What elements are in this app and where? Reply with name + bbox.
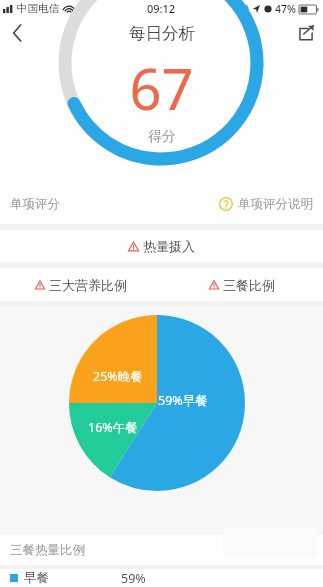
staticText: 中国电信 <box>17 2 59 15</box>
button[interactable]: 三大营养比例 <box>0 268 161 301</box>
staticText: 热量摄入 <box>143 238 195 254</box>
staticText: 47% <box>275 2 296 16</box>
staticText: 三大营养比例 <box>49 277 127 293</box>
staticText: 09:12 <box>147 1 176 16</box>
staticText: 25%晚餐 <box>93 368 143 385</box>
staticText: 每日分析 <box>129 23 195 44</box>
button[interactable]: 热量摄入 <box>0 230 323 262</box>
button[interactable]: Share <box>289 17 323 49</box>
other: Help <box>219 197 233 211</box>
staticText: 得分 <box>148 128 176 146</box>
staticText: 三餐比例 <box>223 277 275 293</box>
staticText: 67 <box>129 50 194 126</box>
staticText: 早餐 <box>24 570 49 586</box>
button[interactable]: 单项评分 <box>0 184 323 224</box>
staticText: 59% <box>121 570 146 587</box>
button[interactable]: Back <box>0 17 34 49</box>
staticText: 单项评分 <box>10 196 60 212</box>
staticText: 59%早餐 <box>158 392 208 409</box>
button[interactable]: 三餐比例 <box>161 268 323 301</box>
staticText: 16%午餐 <box>88 419 138 436</box>
staticText: 单项评分说明 <box>238 196 313 212</box>
staticText: 三餐热量比例 <box>10 542 85 558</box>
button[interactable]: 三餐热量比例 <box>0 535 323 565</box>
